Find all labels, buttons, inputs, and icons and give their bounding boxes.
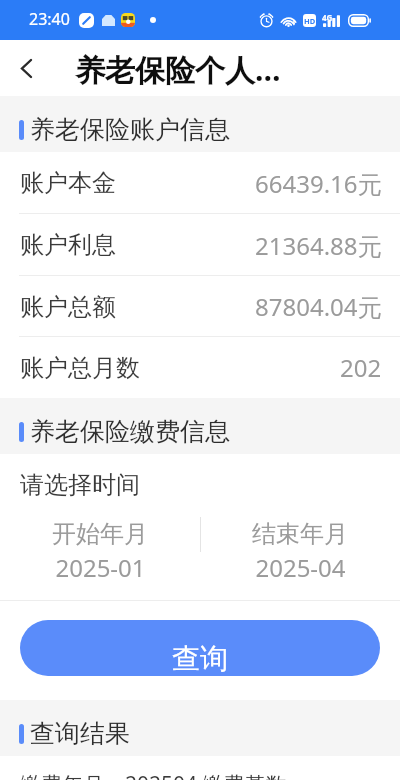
staticText: 开始年月	[52, 519, 148, 549]
staticText: 查询	[172, 641, 228, 676]
staticText: 查询结果	[30, 718, 130, 749]
staticText: 87804.04元	[255, 290, 382, 323]
staticText: 养老保险账户信息	[30, 114, 230, 145]
staticText: 结束年月	[252, 519, 348, 549]
staticText: 21364.88元	[255, 229, 382, 262]
button[interactable]: 查询	[20, 620, 380, 676]
button[interactable]: 账户本金	[0, 152, 400, 214]
button[interactable]: 账户总额	[0, 276, 400, 337]
staticText: HD	[304, 16, 316, 26]
staticText: 4G	[322, 12, 333, 23]
button[interactable]: 开始年月	[0, 505, 200, 600]
button[interactable]: 结束年月	[200, 505, 400, 600]
staticText: 账户总月数	[20, 353, 140, 383]
staticText: 202	[340, 351, 382, 384]
staticText: 2025-04	[255, 551, 346, 584]
staticText: 养老保险缴费信息	[30, 416, 230, 447]
staticText: 请选择时间	[20, 470, 140, 500]
staticText: 账户总额	[20, 292, 116, 322]
staticText: 66439.16元	[255, 167, 382, 200]
button[interactable]: 账户利息	[0, 214, 400, 276]
staticText: 缴费年月：202504 缴费基数	[20, 770, 287, 780]
staticText: 23:40	[29, 8, 70, 30]
button[interactable]: Back	[0, 42, 52, 94]
staticText: 2025-01	[55, 551, 146, 584]
staticText: 账户本金	[20, 168, 116, 198]
button[interactable]: 账户总月数	[0, 337, 400, 398]
staticText: 账户利息	[20, 230, 116, 260]
staticText: 养老保险个人…	[75, 49, 281, 90]
